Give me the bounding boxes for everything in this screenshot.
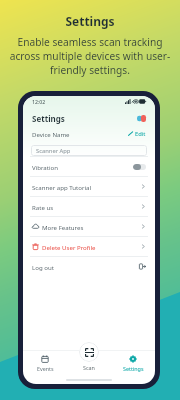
staticText: Vibration <box>32 163 59 171</box>
staticText: Log out <box>32 263 54 271</box>
button[interactable]: Scan <box>79 342 99 371</box>
button[interactable]: Settings <box>111 353 155 372</box>
staticText: Enable seamless scan tracking across mul… <box>5 35 175 77</box>
staticText: Scanner app Tutorial <box>32 183 92 191</box>
button[interactable]: Rate us <box>23 196 155 216</box>
staticText: Scan <box>83 364 95 371</box>
button[interactable]: More Features <box>23 216 155 236</box>
staticText: Events <box>37 365 54 372</box>
button[interactable]: Vibration <box>23 156 155 176</box>
button[interactable]: Scanner app Tutorial <box>23 176 155 196</box>
staticText: Scanner App <box>36 147 71 155</box>
button[interactable]: Log out <box>23 256 155 276</box>
button[interactable]: Delete User Profile <box>23 236 155 256</box>
staticText: Settings <box>123 365 144 372</box>
staticText: Edit <box>135 130 146 137</box>
staticText: Rate us <box>32 203 54 211</box>
staticText: 12:02 <box>32 98 46 104</box>
staticText: Settings <box>32 113 65 124</box>
staticText: Device Name <box>32 130 70 137</box>
staticText: Delete User Profile <box>42 243 96 251</box>
button[interactable]: Events <box>23 353 67 372</box>
button[interactable]: Edit <box>128 130 146 137</box>
staticText: Settings <box>65 13 115 29</box>
staticText: More Features <box>42 223 84 231</box>
